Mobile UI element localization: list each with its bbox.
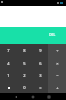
button[interactable]: 1 [0, 69, 16, 81]
staticText: 1 [7, 73, 10, 78]
button[interactable]: − [48, 69, 66, 81]
staticText: 8 [23, 48, 26, 53]
button[interactable]: Home [22, 93, 43, 100]
button[interactable]: 3 [32, 69, 48, 81]
button[interactable]: 9 [32, 44, 48, 57]
staticText: × [56, 61, 59, 66]
button[interactable]: DEL [43, 26, 62, 43]
button[interactable]: × [48, 57, 66, 69]
button[interactable]: ÷ [48, 44, 66, 57]
button[interactable] [0, 81, 16, 93]
button[interactable]: Recent apps [38, 93, 59, 100]
staticText: + [56, 85, 59, 90]
staticText: 3 [39, 73, 42, 78]
staticText: 4 [7, 61, 10, 66]
button[interactable]: 5 [16, 57, 32, 69]
staticText: DEL [49, 32, 56, 37]
button[interactable]: 6 [32, 57, 48, 69]
staticText: 5 [23, 61, 26, 66]
staticText: ÷ [56, 48, 59, 53]
button[interactable]: 4 [0, 57, 16, 69]
button[interactable]: 8 [16, 44, 32, 57]
staticText: − [56, 73, 59, 78]
staticText: 7 [7, 48, 10, 53]
button[interactable]: 7 [0, 44, 16, 57]
button[interactable]: = [32, 81, 48, 93]
staticText: 2 [23, 73, 26, 78]
button[interactable]: Back [5, 93, 26, 100]
button[interactable]: 2 [16, 69, 32, 81]
staticText: 9 [39, 48, 42, 53]
staticText: 0 [23, 85, 26, 90]
staticText: 6 [39, 61, 42, 66]
button[interactable]: + [48, 81, 66, 93]
staticText: = [39, 85, 42, 90]
button[interactable]: 0 [16, 81, 32, 93]
